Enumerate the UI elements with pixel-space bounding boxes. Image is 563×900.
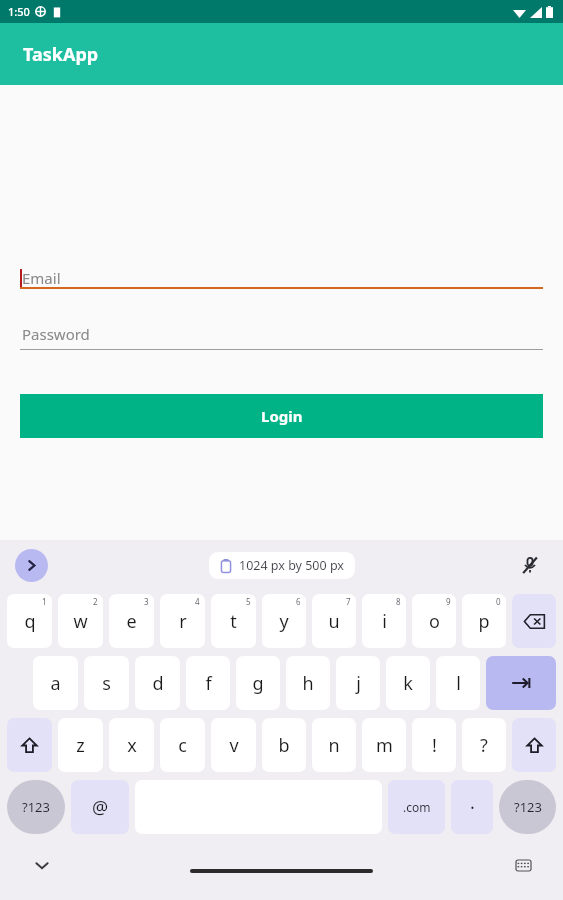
staticText: f xyxy=(205,671,212,696)
button[interactable]: Switch keyboard xyxy=(511,853,535,877)
button[interactable]: Password xyxy=(20,319,543,350)
button[interactable]: o xyxy=(412,594,456,648)
staticText: m xyxy=(376,733,393,758)
staticText: k xyxy=(403,671,413,696)
button[interactable]: ! xyxy=(412,718,456,772)
staticText: 1024 px by 500 px xyxy=(239,557,344,574)
staticText: TaskApp xyxy=(23,42,99,67)
staticText: 0 xyxy=(496,596,501,607)
staticText: q xyxy=(24,609,36,634)
staticText: b xyxy=(278,733,290,758)
button[interactable]: Shift xyxy=(7,718,52,772)
staticText: z xyxy=(76,733,85,758)
button[interactable]: x xyxy=(109,718,154,772)
staticText: v xyxy=(229,733,239,758)
staticText: s xyxy=(102,671,111,696)
staticText: x xyxy=(127,733,137,758)
staticText: ?123 xyxy=(514,798,542,816)
button[interactable]: Hide keyboard xyxy=(30,853,54,877)
button[interactable]: m xyxy=(362,718,406,772)
button[interactable]: s xyxy=(84,656,129,710)
staticText: o xyxy=(429,609,440,634)
staticText: .com xyxy=(403,799,431,815)
staticText: p xyxy=(478,609,490,634)
staticText: 1 xyxy=(42,596,47,607)
button[interactable]: e xyxy=(109,594,154,648)
staticText: 9 xyxy=(446,596,451,607)
staticText: · xyxy=(470,795,475,820)
staticText: d xyxy=(152,671,164,696)
staticText: Password xyxy=(22,324,90,344)
button[interactable]: @ xyxy=(71,780,129,834)
button[interactable]: u xyxy=(312,594,356,648)
button[interactable]: w xyxy=(58,594,103,648)
button[interactable]: y xyxy=(262,594,306,648)
button[interactable]: r xyxy=(160,594,205,648)
button[interactable]: 1024 px by 500 px xyxy=(220,557,344,574)
button[interactable]: l xyxy=(436,656,480,710)
button[interactable]: f xyxy=(186,656,230,710)
staticText: 1:50 xyxy=(8,4,30,19)
button[interactable]: Login xyxy=(20,394,543,438)
staticText: 6 xyxy=(296,596,301,607)
button[interactable]: Shift xyxy=(512,718,556,772)
button[interactable]: Expand suggestions xyxy=(15,549,48,582)
staticText: 5 xyxy=(246,596,251,607)
staticText: 2 xyxy=(93,596,98,607)
button[interactable]: p xyxy=(462,594,506,648)
button[interactable]: h xyxy=(286,656,330,710)
button[interactable]: Email xyxy=(20,258,543,289)
button[interactable]: Next field xyxy=(486,656,556,710)
button[interactable]: n xyxy=(312,718,356,772)
button[interactable]: · xyxy=(451,780,493,834)
button[interactable]: i xyxy=(362,594,406,648)
staticText: Login xyxy=(261,406,303,426)
button[interactable]: ?123 xyxy=(7,780,65,834)
staticText: n xyxy=(328,733,340,758)
staticText: e xyxy=(126,609,137,634)
staticText: c xyxy=(178,733,187,758)
staticText: w xyxy=(73,609,88,634)
button[interactable]: ? xyxy=(462,718,506,772)
staticText: r xyxy=(179,609,187,634)
button[interactable]: k xyxy=(386,656,430,710)
button[interactable]: t xyxy=(211,594,256,648)
staticText: Email xyxy=(22,268,61,288)
button[interactable]: ?123 xyxy=(499,780,556,834)
button[interactable]: d xyxy=(135,656,180,710)
staticText: 8 xyxy=(396,596,401,607)
button[interactable]: a xyxy=(33,656,78,710)
button[interactable]: v xyxy=(211,718,256,772)
button[interactable]: b xyxy=(262,718,306,772)
staticText: ?123 xyxy=(22,798,50,816)
button[interactable]: Home xyxy=(190,869,373,873)
staticText: h xyxy=(302,671,314,696)
staticText: 3 xyxy=(144,596,149,607)
button[interactable]: Backspace xyxy=(512,594,556,648)
button[interactable]: .com xyxy=(388,780,445,834)
staticText: ? xyxy=(480,733,488,758)
staticText: 4 xyxy=(195,596,200,607)
staticText: g xyxy=(252,671,264,696)
staticText: y xyxy=(279,609,289,634)
staticText: j xyxy=(356,671,361,696)
button[interactable]: q xyxy=(7,594,52,648)
button[interactable]: g xyxy=(236,656,280,710)
button[interactable]: c xyxy=(160,718,205,772)
button[interactable]: Microphone off xyxy=(517,552,543,578)
staticText: u xyxy=(328,609,340,634)
staticText: ! xyxy=(432,733,437,758)
staticText: a xyxy=(50,671,61,696)
staticText: 7 xyxy=(346,596,351,607)
staticText: @ xyxy=(92,795,109,820)
staticText: t xyxy=(230,609,237,634)
staticText: l xyxy=(456,671,461,696)
staticText: i xyxy=(382,609,387,634)
button[interactable]: j xyxy=(336,656,380,710)
button[interactable]: z xyxy=(58,718,103,772)
